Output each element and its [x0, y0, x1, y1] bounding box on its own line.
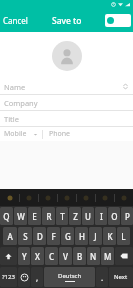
button[interactable]: , [31, 267, 43, 287]
button[interactable]: B [73, 247, 86, 265]
button[interactable]: Q [0, 207, 13, 225]
button[interactable]: Deutsch [44, 267, 95, 287]
button[interactable]: F [47, 227, 60, 245]
staticText: Cancel [3, 15, 28, 26]
button[interactable]: P [121, 207, 133, 225]
staticText: L [121, 231, 126, 242]
button[interactable]: C [45, 247, 58, 265]
staticText: , [36, 272, 39, 283]
button[interactable]: Z [69, 207, 81, 225]
button[interactable]: Suggestion 4 [58, 189, 76, 206]
button[interactable]: Name [0, 79, 133, 94]
button[interactable]: V [59, 247, 72, 265]
button[interactable]: U [82, 207, 94, 225]
button[interactable]: Backspace [115, 247, 133, 265]
button[interactable]: T [56, 207, 68, 225]
button[interactable]: J [89, 227, 102, 245]
staticText: Save to [52, 15, 82, 27]
staticText: Title [4, 114, 19, 124]
button[interactable]: Suggestion 2 [20, 189, 38, 206]
button[interactable]: W [14, 207, 27, 225]
staticText: Z [73, 211, 78, 222]
staticText: Name [4, 82, 26, 92]
staticText: R [46, 211, 52, 222]
staticText: U [85, 211, 91, 222]
staticText: O [111, 211, 118, 222]
button[interactable]: M [101, 247, 114, 265]
staticText: D [37, 231, 43, 242]
button[interactable]: Company [0, 95, 133, 110]
staticText: Mobile [4, 129, 27, 139]
button[interactable]: K [103, 227, 116, 245]
staticText: N [90, 251, 97, 262]
button[interactable]: Suggestion 5 [77, 189, 95, 206]
button[interactable]: Add photo [52, 41, 82, 71]
staticText: H [79, 231, 85, 242]
button[interactable]: . [96, 267, 108, 287]
button[interactable]: Title [0, 111, 133, 126]
staticText: M [104, 251, 112, 262]
button[interactable]: Cancel [0, 11, 31, 30]
button[interactable]: A [3, 227, 17, 245]
button[interactable]: Phone [49, 127, 129, 141]
staticText: T [60, 211, 65, 222]
staticText: Next [114, 273, 128, 281]
button[interactable]: Y [18, 247, 30, 265]
staticText: C [49, 251, 55, 262]
button[interactable]: Suggestion 6 [96, 189, 114, 206]
staticText: Phone [49, 129, 71, 139]
button[interactable]: H [75, 227, 88, 245]
staticText: P [125, 211, 130, 222]
button[interactable]: Suggestion 3 [39, 189, 57, 206]
staticText: E [32, 211, 37, 222]
staticText: G [65, 231, 71, 242]
button[interactable]: E [28, 207, 41, 225]
staticText: I [100, 211, 103, 222]
button[interactable]: Suggestion 1 [0, 189, 19, 206]
staticText: . [101, 272, 104, 283]
staticText: V [63, 251, 68, 262]
button[interactable]: Suggestion 7 [115, 189, 133, 206]
other: Expand name [122, 83, 129, 90]
button[interactable]: L [117, 227, 130, 245]
staticText: X [35, 251, 40, 262]
staticText: Q [3, 211, 10, 222]
staticText: J [94, 231, 97, 242]
staticText: ?123 [2, 273, 15, 281]
button[interactable]: X [31, 247, 44, 265]
button[interactable]: D [33, 227, 46, 245]
staticText: S [23, 231, 28, 242]
button[interactable]: Emoji [18, 267, 30, 287]
button[interactable]: G [61, 227, 74, 245]
staticText: K [107, 231, 113, 242]
staticText: F [51, 231, 56, 242]
button[interactable]: Shift [0, 247, 17, 265]
staticText: B [77, 251, 83, 262]
button[interactable]: R [42, 207, 55, 225]
staticText: W [17, 211, 25, 222]
button[interactable]: Save account [105, 14, 131, 27]
button[interactable]: S [18, 227, 32, 245]
staticText: Deutsch [58, 272, 82, 280]
button[interactable]: Mobile [4, 127, 38, 141]
button[interactable]: N [87, 247, 100, 265]
staticText: A [7, 231, 13, 242]
button[interactable]: ?123 [0, 267, 17, 287]
staticText: Company [4, 98, 38, 108]
button[interactable]: Next [109, 267, 133, 287]
staticText: Y [22, 251, 27, 262]
button[interactable]: O [108, 207, 120, 225]
button[interactable]: I [95, 207, 107, 225]
